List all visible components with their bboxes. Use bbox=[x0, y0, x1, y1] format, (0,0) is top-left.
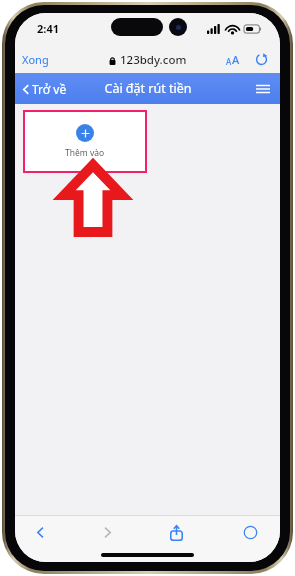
staticText: A bbox=[226, 56, 232, 67]
staticText: Trở về bbox=[32, 81, 67, 97]
staticText: 123bdy.com bbox=[120, 52, 187, 68]
staticText: Cài đặt rút tiền bbox=[104, 80, 192, 97]
staticText: 2:41 bbox=[37, 21, 59, 36]
staticText: Xong bbox=[22, 52, 49, 67]
button[interactable]: Trở về bbox=[15, 77, 75, 101]
button[interactable]: Reload bbox=[253, 51, 270, 68]
button[interactable]: Thêm vào bbox=[23, 110, 147, 173]
button[interactable]: Xong bbox=[15, 49, 56, 70]
button[interactable]: Share bbox=[158, 520, 195, 546]
button[interactable]: Tabs bbox=[231, 520, 270, 545]
staticText: A bbox=[232, 52, 240, 67]
staticText: Thêm vào bbox=[65, 147, 105, 159]
button[interactable]: 123bdy.com bbox=[101, 49, 195, 71]
button[interactable]: Menu bbox=[246, 77, 280, 101]
button[interactable]: Text size bbox=[223, 49, 243, 70]
button[interactable]: Back bbox=[25, 520, 56, 545]
button[interactable]: Forward bbox=[92, 520, 123, 545]
